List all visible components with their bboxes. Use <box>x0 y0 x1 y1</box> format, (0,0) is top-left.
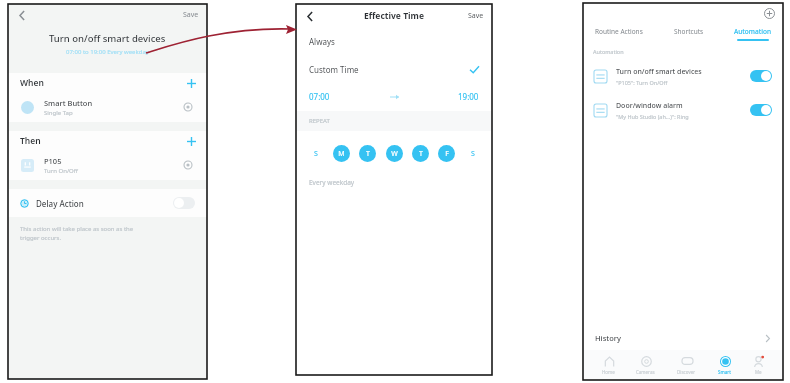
button[interactable]: P105 <box>8 150 207 180</box>
button[interactable]: S <box>464 145 481 162</box>
staticText: History <box>595 333 621 343</box>
staticText: Every weekday <box>309 178 355 187</box>
button[interactable]: Add When <box>183 75 199 91</box>
button[interactable]: T <box>359 145 376 162</box>
staticText: Cameras <box>636 369 655 375</box>
staticText: Routine Actions <box>595 27 643 36</box>
button[interactable]: History <box>583 326 783 350</box>
staticText: Home <box>602 369 615 375</box>
staticText: M <box>338 149 345 159</box>
button[interactable]: Toggle Door/window alarm <box>750 104 772 116</box>
button[interactable]: Shortcuts <box>672 27 706 41</box>
button[interactable]: Back <box>12 5 32 25</box>
staticText: S <box>314 149 318 159</box>
button[interactable]: Add <box>761 5 777 21</box>
button[interactable]: Automation <box>732 27 773 41</box>
staticText: Turn On/Off <box>44 167 78 175</box>
button[interactable]: Always <box>296 28 492 54</box>
button[interactable]: Add Then <box>183 133 199 149</box>
staticText: REPEAT <box>309 117 330 125</box>
staticText: T <box>366 149 370 159</box>
staticText: Discover <box>677 369 696 375</box>
staticText: T <box>419 149 423 159</box>
button[interactable]: Back <box>300 6 320 26</box>
button[interactable]: Delay Action <box>8 189 207 217</box>
staticText: Delay Action <box>36 198 84 209</box>
staticText: Then <box>20 135 41 147</box>
button[interactable]: Smart Button <box>8 92 207 122</box>
button[interactable]: F <box>438 145 455 162</box>
button[interactable]: Delay action toggle <box>173 197 195 209</box>
staticText: W <box>391 149 398 159</box>
button[interactable]: Smart <box>715 353 734 377</box>
staticText: Turn on/off smart devices <box>616 67 702 77</box>
staticText: Automation <box>593 48 624 55</box>
staticText: "P105": Turn On/Off <box>616 79 668 86</box>
button[interactable]: T <box>412 145 429 162</box>
staticText: Save <box>183 10 199 20</box>
button[interactable]: Turn on/off smart devices <box>583 61 783 91</box>
button[interactable]: Custom Time <box>296 54 492 84</box>
button[interactable]: Discover <box>674 353 699 377</box>
staticText: Custom Time <box>309 64 359 75</box>
staticText: Automation <box>734 27 771 36</box>
staticText: Smart <box>718 369 731 375</box>
staticText: Door/window alarm <box>616 101 683 111</box>
staticText: 07:00 to 19:00 Every weekday <box>66 48 149 56</box>
button[interactable]: 07:00 <box>309 91 330 102</box>
button[interactable]: Routine Actions <box>593 27 645 41</box>
button[interactable]: Save <box>175 7 207 23</box>
staticText: F <box>445 149 449 159</box>
staticText: This action will take place as soon as t… <box>20 225 134 242</box>
button[interactable]: Home <box>599 353 618 377</box>
staticText: Turn on/off smart devices <box>49 32 166 45</box>
staticText: Save <box>468 11 484 21</box>
staticText: Me <box>755 369 762 375</box>
button[interactable]: Settings <box>181 100 195 114</box>
staticText: Effective Time <box>364 10 424 22</box>
button[interactable]: Save <box>460 8 492 24</box>
button[interactable]: S <box>307 145 324 162</box>
button[interactable]: M <box>333 145 350 162</box>
staticText: Single Tap <box>44 109 73 117</box>
staticText: Shortcuts <box>674 27 704 36</box>
staticText: "My Hub Studio (ah...)": Ring <box>616 113 689 120</box>
button[interactable]: Settings <box>181 158 195 172</box>
staticText: S <box>471 149 475 159</box>
button[interactable]: Door/window alarm <box>583 95 783 125</box>
button[interactable]: 19:00 <box>458 91 479 102</box>
staticText: Always <box>309 36 335 47</box>
staticText: Smart Button <box>44 98 93 108</box>
button[interactable]: Toggle Turn on/off smart devices <box>750 70 772 82</box>
staticText: When <box>20 77 44 89</box>
button[interactable]: Me <box>749 353 767 377</box>
button[interactable]: W <box>386 145 403 162</box>
button[interactable]: Cameras <box>633 353 658 377</box>
staticText: P105 <box>44 156 62 166</box>
